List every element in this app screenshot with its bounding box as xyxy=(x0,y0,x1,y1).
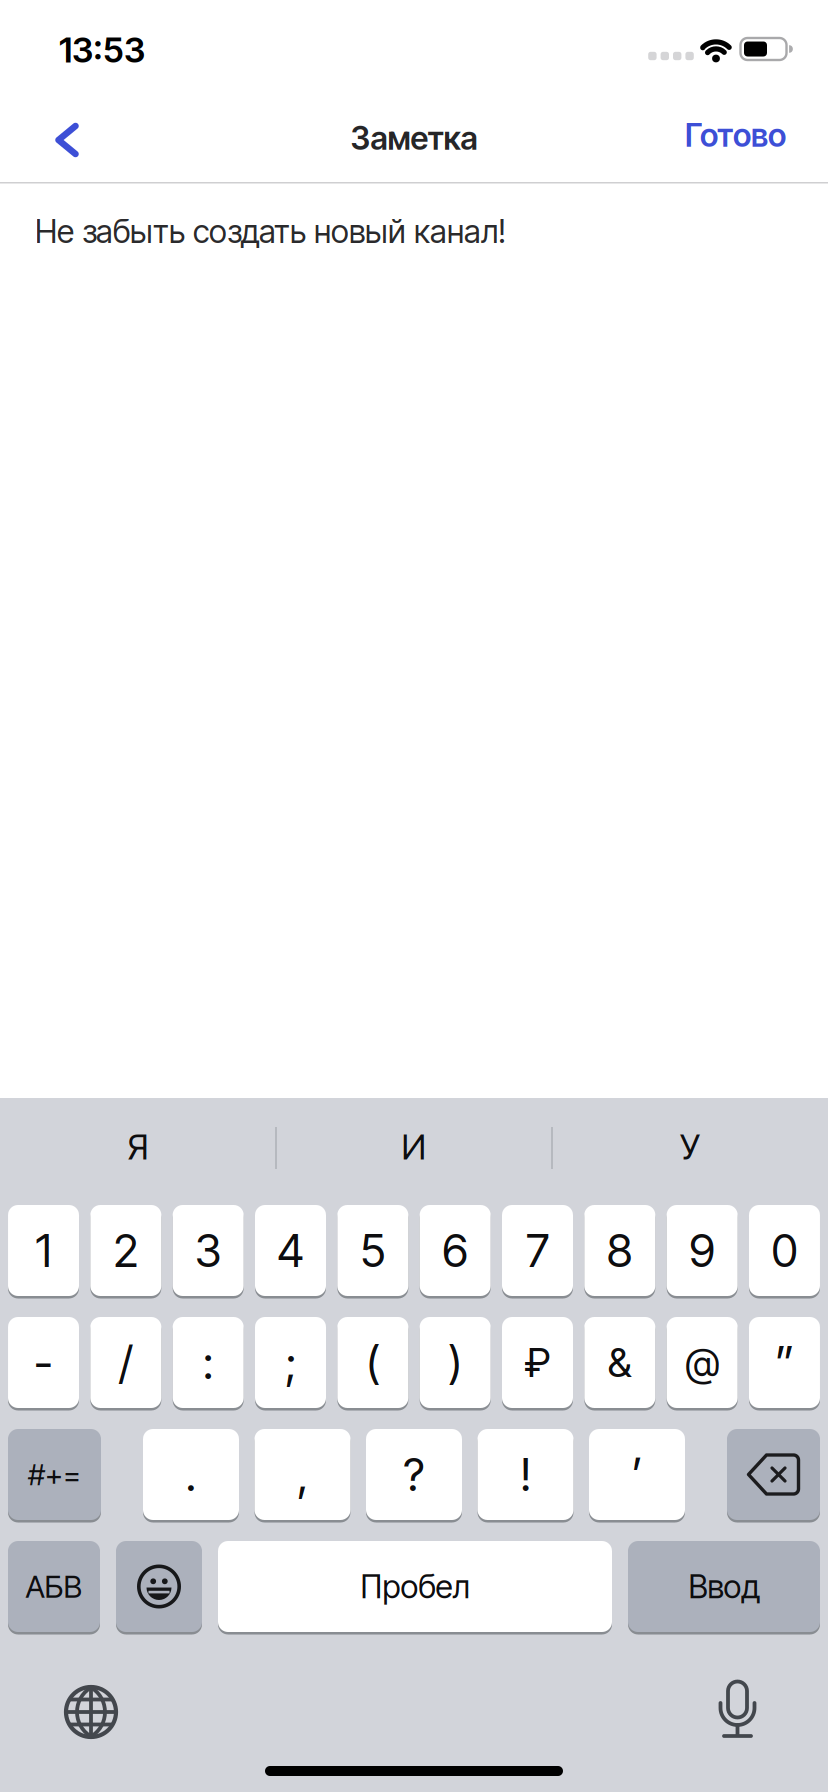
button[interactable]: / xyxy=(90,1317,161,1410)
staticText: 7 xyxy=(526,1224,549,1277)
staticText: 8 xyxy=(607,1224,633,1277)
staticText: ’ xyxy=(631,1448,642,1501)
button[interactable]: И xyxy=(279,1102,549,1192)
staticText: / xyxy=(119,1336,133,1389)
button[interactable]: Готово xyxy=(685,116,786,154)
staticText: 3 xyxy=(195,1224,222,1277)
staticText: 2 xyxy=(113,1224,138,1277)
button[interactable]: 0 xyxy=(749,1205,820,1298)
button[interactable] xyxy=(727,1429,820,1522)
staticText: ( xyxy=(366,1336,380,1389)
button[interactable]: 8 xyxy=(584,1205,655,1298)
staticText: Пробел xyxy=(360,1568,469,1605)
staticText: ₽ xyxy=(524,1339,550,1386)
button[interactable] xyxy=(116,1541,202,1634)
button[interactable]: 5 xyxy=(337,1205,408,1298)
button[interactable]: @ xyxy=(667,1317,738,1410)
button[interactable]: #+= xyxy=(8,1429,101,1522)
button[interactable]: ? xyxy=(366,1429,462,1522)
button[interactable]: 2 xyxy=(90,1205,161,1298)
button[interactable]: ; xyxy=(255,1317,326,1410)
button[interactable] xyxy=(45,115,89,165)
staticText: АБВ xyxy=(25,1568,82,1605)
button[interactable]: ( xyxy=(337,1317,408,1410)
button[interactable]: ! xyxy=(477,1429,573,1522)
button[interactable]: Я xyxy=(3,1102,273,1192)
button[interactable]: : xyxy=(173,1317,244,1410)
button[interactable] xyxy=(718,1681,756,1739)
button[interactable]: , xyxy=(254,1429,350,1522)
staticText: 9 xyxy=(689,1224,715,1277)
button[interactable]: 3 xyxy=(173,1205,244,1298)
staticText: ; xyxy=(285,1336,296,1389)
button[interactable]: ’ xyxy=(589,1429,685,1522)
button[interactable]: ) xyxy=(420,1317,491,1410)
staticText: Я xyxy=(127,1127,149,1167)
button[interactable]: Ввод xyxy=(628,1541,820,1634)
staticText: , xyxy=(297,1448,308,1501)
staticText: ! xyxy=(520,1448,531,1501)
staticText: : xyxy=(203,1336,214,1389)
button[interactable]: & xyxy=(584,1317,655,1410)
staticText: ” xyxy=(775,1336,794,1389)
button[interactable]: ” xyxy=(749,1317,820,1410)
button[interactable]: - xyxy=(8,1317,79,1410)
button[interactable]: АБВ xyxy=(8,1541,100,1634)
button[interactable]: 4 xyxy=(255,1205,326,1298)
staticText: #+= xyxy=(28,1457,81,1492)
button[interactable]: ₽ xyxy=(502,1317,573,1410)
staticText: У xyxy=(680,1127,700,1167)
staticText: & xyxy=(608,1339,632,1386)
staticText: 6 xyxy=(442,1224,468,1277)
button[interactable] xyxy=(64,1685,118,1739)
staticText: Ввод xyxy=(688,1568,759,1605)
staticText: И xyxy=(401,1127,426,1167)
staticText: Не забыть создать новый канал! xyxy=(35,212,506,250)
staticText: 5 xyxy=(360,1224,385,1277)
staticText: Заметка xyxy=(350,119,477,157)
staticText: 0 xyxy=(771,1224,797,1277)
staticText: ) xyxy=(448,1336,462,1389)
staticText: . xyxy=(185,1448,196,1501)
staticText: @ xyxy=(685,1340,719,1385)
staticText: 4 xyxy=(277,1224,304,1277)
button[interactable]: 6 xyxy=(420,1205,491,1298)
button[interactable]: 7 xyxy=(502,1205,573,1298)
button[interactable]: 1 xyxy=(8,1205,79,1298)
staticText: 1 xyxy=(35,1224,51,1277)
button[interactable]: Пробел xyxy=(218,1541,612,1634)
staticText: 13:53 xyxy=(59,30,145,70)
button[interactable]: 9 xyxy=(667,1205,738,1298)
button[interactable]: У xyxy=(555,1102,825,1192)
staticText: - xyxy=(34,1336,53,1389)
button[interactable]: . xyxy=(143,1429,239,1522)
staticText: ? xyxy=(403,1448,424,1501)
staticText: Готово xyxy=(685,116,786,154)
